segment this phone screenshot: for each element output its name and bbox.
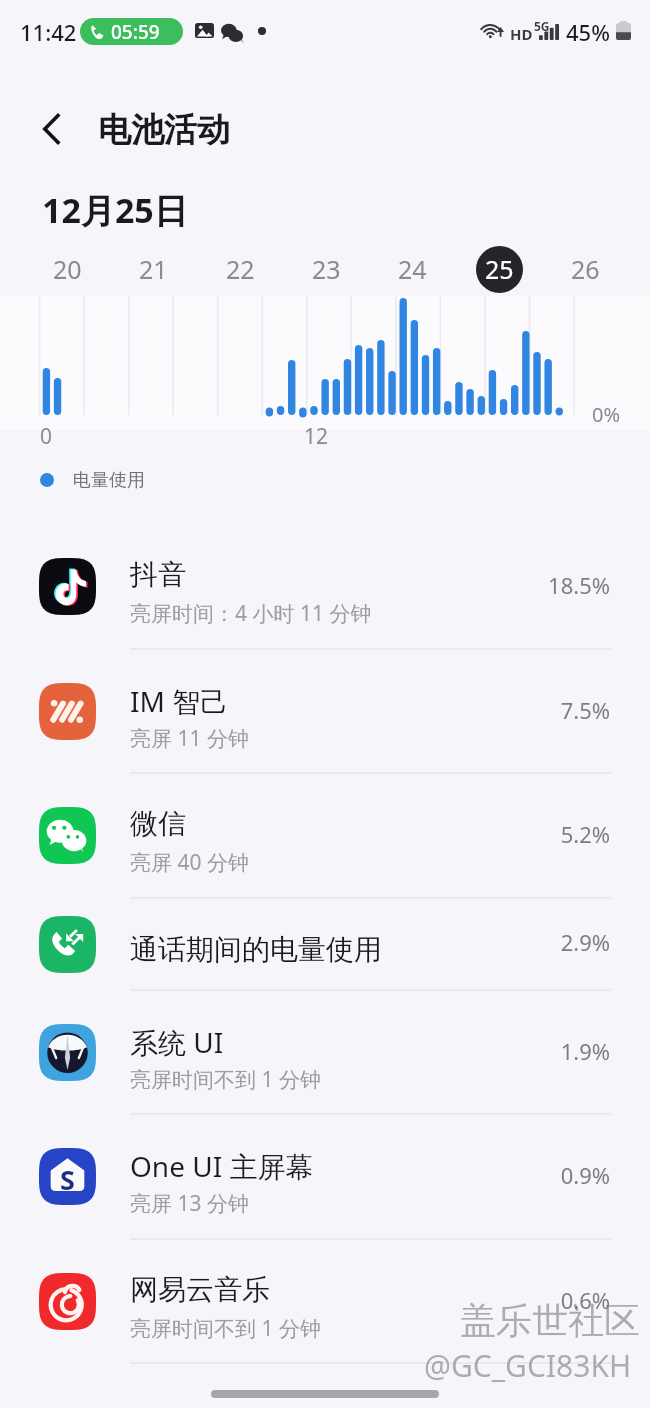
staticText: S (60, 1161, 75, 1198)
staticText: 亮屏 11 分钟 (130, 724, 249, 753)
staticText: 45% (566, 17, 610, 47)
button[interactable]: 26 (558, 242, 612, 296)
button[interactable]: 通话期间的电量使用 (0, 898, 650, 990)
button[interactable]: 微信 (0, 773, 650, 898)
staticText: 亮屏时间不到 1 分钟 (130, 1314, 321, 1343)
staticText: @GC_GCI83KH (424, 1345, 632, 1386)
staticText: 通话期间的电量使用 (130, 932, 382, 967)
button[interactable]: Back (27, 104, 77, 154)
staticText: 微信 (130, 806, 186, 841)
staticText: 网易云音乐 (130, 1272, 270, 1307)
button[interactable]: 系统 UI (0, 990, 650, 1115)
staticText: 05:59 (111, 19, 160, 45)
staticText: 25 (485, 252, 514, 286)
staticText: 21 (139, 252, 168, 286)
staticText: 亮屏 13 分钟 (130, 1189, 249, 1218)
staticText: 22 (226, 252, 255, 286)
staticText: 23 (312, 252, 341, 286)
button[interactable]: 23 (299, 242, 353, 296)
staticText: 电量使用 (73, 469, 145, 492)
staticText: 26 (571, 252, 600, 286)
button[interactable]: 抖音 (0, 524, 650, 649)
button[interactable]: IM 智己 (0, 649, 650, 774)
staticText: 5.2% (560, 819, 610, 849)
staticText: 抖音 (130, 557, 186, 592)
staticText: IM 智己 (130, 682, 229, 720)
staticText: 亮屏时间不到 1 分钟 (130, 1065, 321, 1094)
button[interactable]: 24 (385, 242, 439, 296)
staticText: One UI 主屏幕 (130, 1147, 314, 1185)
button[interactable]: 22 (213, 242, 267, 296)
staticText: 18.5% (548, 570, 610, 600)
staticText: 盖乐世社区 (460, 1298, 640, 1343)
staticText: 5G (534, 18, 550, 34)
button[interactable]: 21 (126, 242, 180, 296)
staticText: 系统 UI (130, 1023, 224, 1061)
staticText: 2.9% (560, 927, 610, 957)
button[interactable]: 网易云音乐 (0, 1239, 650, 1364)
button[interactable]: 25 (472, 242, 526, 296)
staticText: 亮屏时间：4 小时 11 分钟 (130, 599, 372, 628)
staticText: 24 (398, 252, 427, 286)
staticText: 电池活动 (98, 109, 230, 151)
staticText: 7.5% (560, 695, 610, 725)
staticText: 0.9% (560, 1160, 610, 1190)
button[interactable]: 20 (40, 242, 94, 296)
button[interactable]: S (0, 1114, 650, 1239)
staticText: 0.6% (560, 1285, 610, 1315)
staticText: 12 (304, 422, 329, 451)
staticText: HD (510, 24, 533, 44)
staticText: 1.9% (560, 1036, 610, 1066)
staticText: 12月25日 (42, 187, 188, 233)
staticText: 11:42 (20, 17, 77, 47)
staticText: 0 (40, 422, 53, 451)
staticText: 亮屏 40 分钟 (130, 848, 249, 877)
staticText: 0% (592, 401, 621, 428)
staticText: 20 (53, 252, 82, 286)
